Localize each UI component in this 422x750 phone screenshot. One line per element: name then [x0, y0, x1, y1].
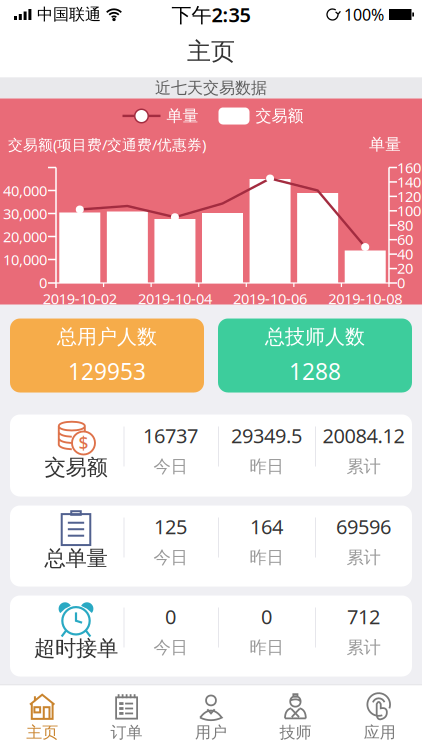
staticText: 累计 [346, 547, 380, 568]
staticText: 超时接单 [34, 635, 118, 662]
staticText: 29349.5 [231, 422, 302, 449]
staticText: 0 [261, 603, 272, 630]
staticText: 129953 [68, 356, 146, 386]
staticText: 累计 [346, 637, 380, 658]
staticText: 140 [397, 172, 421, 192]
staticText: 订单 [111, 723, 143, 742]
staticText: 0 [39, 273, 47, 292]
staticText: 总技师人数 [265, 325, 365, 349]
staticText: 应用 [364, 723, 396, 742]
staticText: 交易额 [44, 454, 107, 481]
staticText: 主页 [187, 37, 235, 66]
staticText: 下午2:35 [171, 1, 250, 28]
staticText: 用户 [195, 723, 227, 742]
staticText: 单量 [369, 135, 401, 154]
staticText: 今日 [153, 547, 187, 568]
staticText: 总用户人数 [57, 325, 157, 349]
staticText: 2019-10-04 [138, 289, 212, 308]
staticText: 0 [165, 603, 176, 630]
staticText: $ [78, 431, 88, 454]
button[interactable]: 应用 [338, 688, 422, 748]
staticText: 100% [344, 4, 384, 25]
staticText: 今日 [153, 456, 187, 477]
staticText: 单量 [166, 106, 198, 126]
staticText: 60 [397, 230, 413, 249]
staticText: 交易额 [255, 106, 303, 126]
staticText: 2019-10-02 [43, 289, 117, 308]
staticText: 昨日 [249, 637, 283, 658]
staticText: 2019-10-08 [328, 289, 402, 308]
staticText: 164 [250, 513, 283, 540]
staticText: 中国联通 [37, 5, 101, 24]
staticText: 20 [397, 258, 413, 278]
staticText: 交易额(项目费/交通费/优惠券) [8, 135, 206, 154]
staticText: 1288 [289, 356, 341, 386]
staticText: 20,000 [3, 227, 47, 246]
staticText: 125 [154, 513, 187, 540]
staticText: 80 [397, 215, 413, 235]
staticText: 近七天交易数据 [155, 78, 267, 98]
staticText: 主页 [26, 723, 58, 742]
staticText: 0 [397, 273, 405, 292]
staticText: 16737 [143, 422, 198, 449]
staticText: 712 [347, 603, 380, 630]
staticText: 100 [397, 201, 421, 220]
button[interactable]: 技师 [253, 688, 338, 748]
button[interactable]: 总用户人数 [10, 318, 204, 392]
staticText: 160 [397, 158, 421, 177]
staticText: 20084.12 [322, 422, 404, 449]
staticText: 10,000 [3, 250, 47, 269]
staticText: 30,000 [3, 204, 47, 223]
staticText: 今日 [153, 637, 187, 658]
staticText: 2019-10-06 [233, 289, 307, 308]
staticText: 120 [397, 187, 421, 206]
staticText: 累计 [346, 456, 380, 477]
staticText: 40 [397, 244, 413, 264]
button[interactable]: 订单 [84, 688, 169, 748]
staticText: 昨日 [249, 547, 283, 568]
button[interactable]: 主页 [0, 688, 84, 748]
staticText: 69596 [336, 513, 391, 540]
button[interactable]: 用户 [169, 688, 253, 748]
staticText: 总单量 [44, 545, 107, 572]
staticText: 技师 [279, 723, 311, 742]
staticText: 40,000 [3, 181, 47, 200]
staticText: 昨日 [249, 456, 283, 477]
button[interactable]: 总技师人数 [218, 318, 412, 392]
